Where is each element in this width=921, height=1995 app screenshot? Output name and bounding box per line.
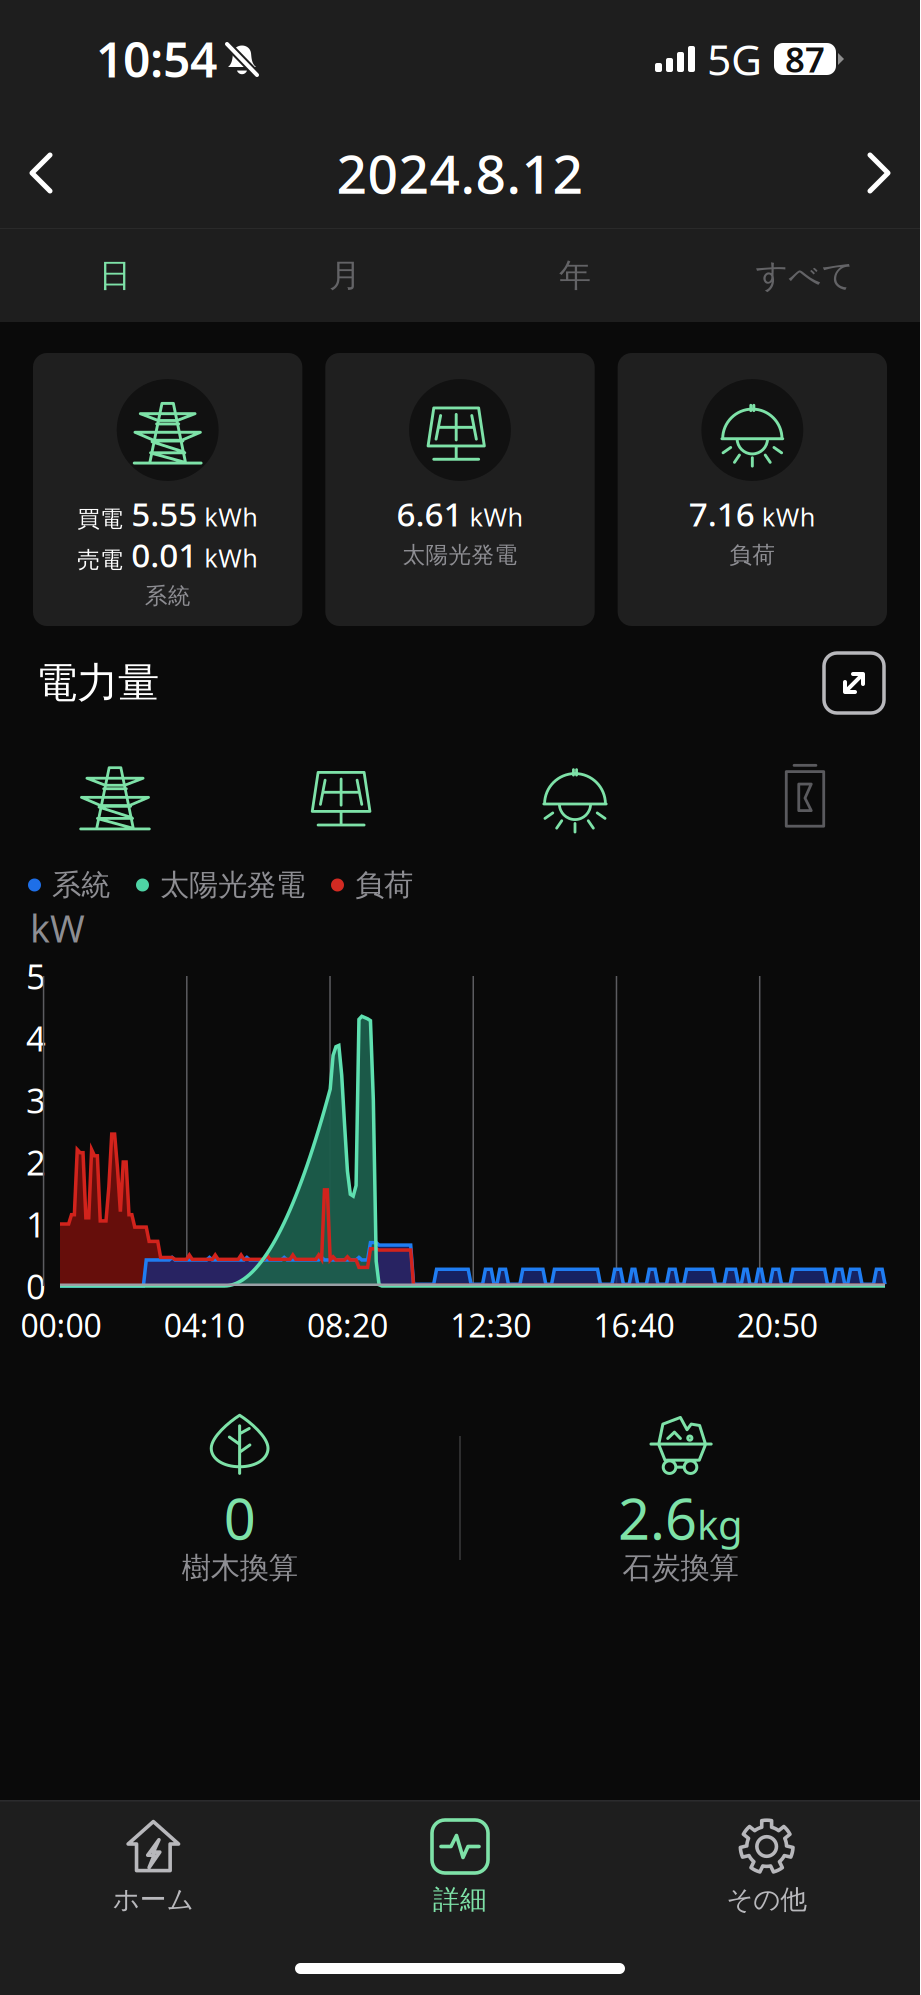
staticText: 04:10 — [164, 1304, 245, 1346]
staticText: 7.16 — [689, 491, 755, 536]
staticText: 樹木換算 — [182, 1550, 298, 1586]
button[interactable]: Solar series — [230, 756, 460, 834]
staticText: 5 — [26, 953, 46, 999]
button[interactable]: 詳細 — [307, 1817, 613, 1915]
staticText: 3 — [26, 1077, 46, 1123]
staticText: その他 — [726, 1883, 807, 1916]
staticText: kWh — [204, 500, 258, 533]
staticText: 電力量 — [36, 658, 159, 708]
button[interactable]: Expand chart — [824, 653, 884, 713]
staticText: 5.55 — [131, 491, 197, 536]
staticText: 10:54 — [96, 27, 217, 91]
staticText: 12:30 — [450, 1304, 531, 1346]
button[interactable]: Previous day — [0, 131, 82, 215]
staticText: 16:40 — [593, 1304, 674, 1346]
staticText: 5G — [707, 31, 762, 87]
staticText: 系統 — [145, 582, 191, 610]
staticText: 太陽光発電 — [160, 867, 305, 903]
staticText: 月 — [329, 256, 361, 295]
button[interactable]: ホーム — [0, 1817, 307, 1915]
staticText: kW — [30, 903, 85, 953]
staticText: 08:20 — [307, 1304, 388, 1346]
staticText: kg — [697, 1498, 743, 1551]
staticText: 4 — [26, 1015, 46, 1061]
staticText: kWh — [204, 541, 258, 574]
staticText: 負荷 — [355, 867, 413, 903]
button[interactable]: その他 — [613, 1817, 920, 1915]
staticText: 売電 — [77, 546, 123, 574]
button[interactable]: Grid series — [0, 756, 230, 834]
staticText: 0 — [224, 1481, 256, 1555]
staticText: 0.01 — [131, 532, 197, 577]
staticText: 1 — [26, 1201, 46, 1247]
button[interactable]: Load series — [460, 756, 690, 834]
staticText: 2.6 — [618, 1481, 697, 1555]
staticText: 系統 — [52, 867, 110, 903]
staticText: ホーム — [113, 1883, 194, 1916]
staticText: 石炭換算 — [622, 1550, 738, 1586]
staticText: 年 — [559, 256, 591, 295]
button[interactable]: 日 — [0, 229, 230, 322]
staticText: 日 — [99, 256, 131, 295]
staticText: 00:00 — [20, 1304, 101, 1346]
staticText: 6.61 — [396, 491, 462, 536]
button[interactable]: Next day — [838, 131, 920, 215]
button[interactable]: すべて — [690, 229, 920, 322]
staticText: 2024.8.12 — [336, 138, 583, 208]
button[interactable]: 年 — [460, 229, 690, 322]
staticText: 20:50 — [737, 1304, 818, 1346]
staticText: 0 — [26, 1263, 46, 1309]
staticText: 87 — [785, 36, 825, 82]
staticText: 2 — [26, 1139, 46, 1185]
button[interactable]: 月 — [230, 229, 460, 322]
button[interactable]: Battery series — [690, 756, 920, 834]
staticText: 太陽光発電 — [402, 541, 517, 569]
staticText: kWh — [762, 500, 816, 533]
staticText: 負荷 — [729, 541, 775, 569]
staticText: 詳細 — [433, 1883, 487, 1916]
staticText: すべて — [755, 256, 854, 295]
staticText: 買電 — [77, 505, 123, 533]
staticText: kWh — [469, 500, 523, 533]
